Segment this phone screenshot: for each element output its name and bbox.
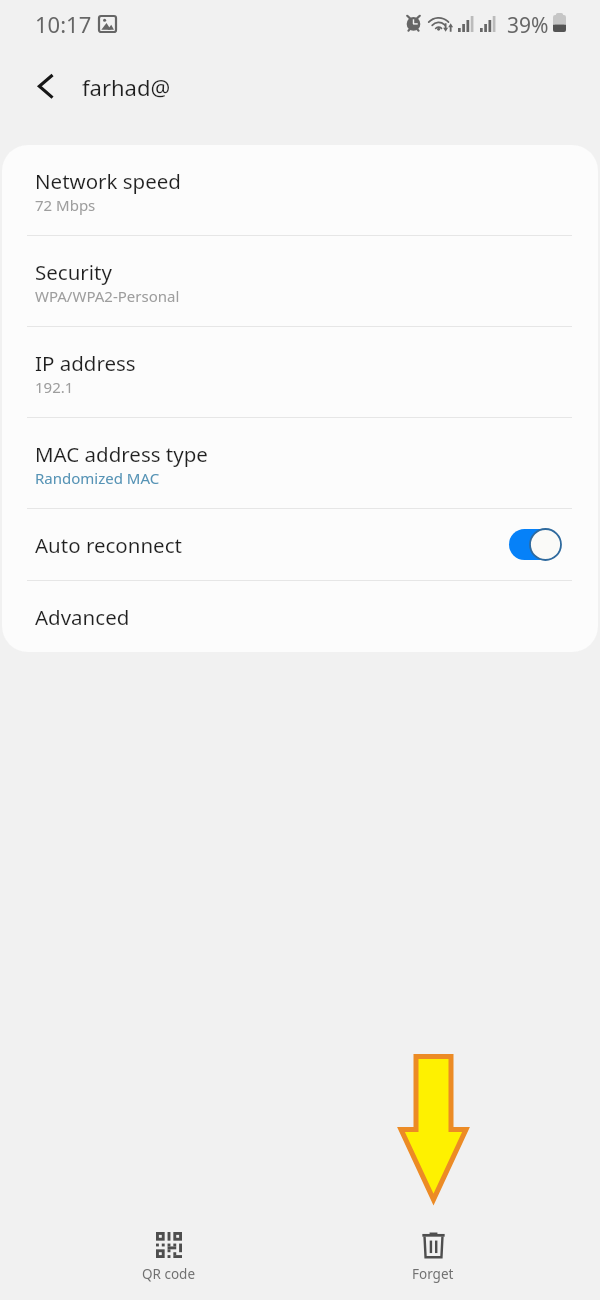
staticText: Network speed bbox=[35, 167, 181, 195]
staticText: Forget bbox=[412, 1265, 454, 1283]
staticText: farhad@ bbox=[82, 72, 171, 102]
staticText: Security bbox=[35, 258, 112, 286]
button[interactable]: Forget bbox=[372, 1222, 494, 1294]
button[interactable]: Network speed bbox=[2, 145, 598, 236]
staticText: WPA/WPA2-Personal bbox=[35, 286, 180, 306]
staticText: Advanced bbox=[35, 603, 130, 631]
button[interactable]: Security bbox=[2, 236, 598, 327]
button[interactable]: IP address bbox=[2, 327, 598, 418]
button[interactable]: Auto reconnect bbox=[2, 509, 598, 581]
button[interactable]: QR code bbox=[108, 1222, 230, 1294]
staticText: IP address bbox=[35, 349, 136, 377]
staticText: 192.1 bbox=[35, 377, 74, 397]
staticText: Randomized MAC bbox=[35, 468, 160, 488]
staticText: QR code bbox=[142, 1265, 196, 1283]
staticText: MAC address type bbox=[35, 440, 208, 468]
staticText: 39% bbox=[507, 11, 549, 40]
button[interactable]: Navigate up bbox=[18, 69, 62, 113]
staticText: 72 Mbps bbox=[35, 195, 96, 215]
staticText: Auto reconnect bbox=[35, 531, 182, 559]
button[interactable]: Advanced bbox=[2, 581, 598, 652]
button[interactable]: Auto reconnect, on bbox=[509, 529, 561, 560]
button[interactable]: MAC address type bbox=[2, 418, 598, 509]
staticText: 10:17 bbox=[35, 9, 92, 39]
